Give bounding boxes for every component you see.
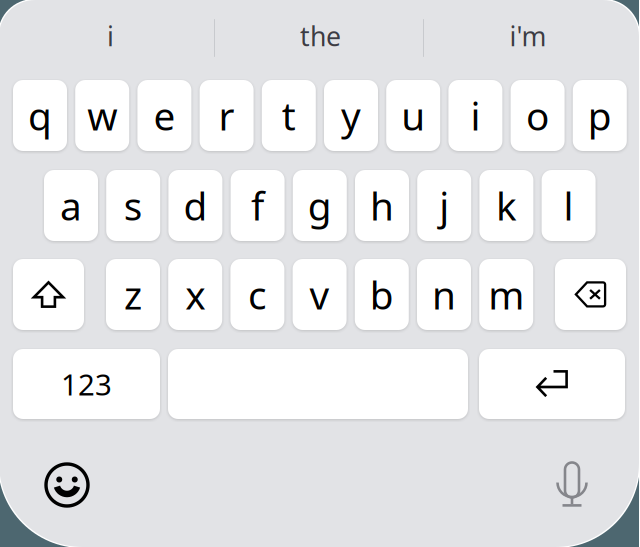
button[interactable]: a [44,170,98,241]
button[interactable]: r [200,80,254,151]
button[interactable]: z [106,259,160,330]
staticText: t [282,90,296,141]
staticText: k [496,180,517,231]
button[interactable]: Return [479,349,625,419]
staticText: 123 [61,364,112,403]
staticText: w [87,90,117,141]
button[interactable]: l [542,170,596,241]
staticText: y [341,90,361,141]
staticText: p [588,90,612,141]
staticText: o [526,90,549,141]
button[interactable]: 123 [13,349,160,419]
button[interactable]: u [386,80,440,151]
button[interactable]: g [293,170,347,241]
staticText: l [564,180,574,231]
button[interactable]: i'm [420,0,636,72]
staticText: n [432,269,456,320]
staticText: i [107,18,114,54]
staticText: b [370,269,394,320]
button[interactable]: n [417,259,471,330]
staticText: r [219,90,235,141]
button[interactable]: Shift [13,259,84,330]
staticText: i [470,90,480,141]
button[interactable]: i [448,80,502,151]
staticText: the [300,18,341,54]
button[interactable]: m [479,259,533,330]
staticText: v [310,269,330,320]
button[interactable]: Dictation [555,457,587,503]
button[interactable]: c [230,259,284,330]
button[interactable]: i [3,0,218,72]
staticText: g [308,180,332,231]
button[interactable]: w [75,80,129,151]
staticText: m [488,269,524,320]
staticText: i'm [509,18,546,54]
button[interactable]: h [355,170,409,241]
staticText: e [153,90,175,141]
staticText: c [248,269,267,320]
button[interactable]: s [106,170,160,241]
staticText: q [28,90,52,141]
button[interactable]: p [573,80,627,151]
button[interactable]: b [355,259,409,330]
staticText: x [185,269,205,320]
button[interactable]: q [13,80,67,151]
staticText: z [124,269,142,320]
button[interactable]: k [479,170,533,241]
staticText: d [183,180,207,231]
staticText: a [60,180,82,231]
button[interactable]: e [137,80,191,151]
button[interactable]: Emoji [46,464,88,506]
button[interactable]: x [168,259,222,330]
staticText: f [251,180,264,231]
button[interactable]: v [293,259,347,330]
button[interactable]: f [231,170,285,241]
staticText: j [439,180,449,231]
button[interactable]: j [417,170,471,241]
staticText: h [370,180,394,231]
button[interactable]: y [324,80,378,151]
staticText: s [124,180,143,231]
button[interactable]: Delete [555,259,626,330]
button[interactable]: d [168,170,222,241]
button[interactable]: the [216,0,425,72]
staticText: u [401,90,425,141]
button[interactable]: o [511,80,565,151]
button[interactable]: t [262,80,316,151]
